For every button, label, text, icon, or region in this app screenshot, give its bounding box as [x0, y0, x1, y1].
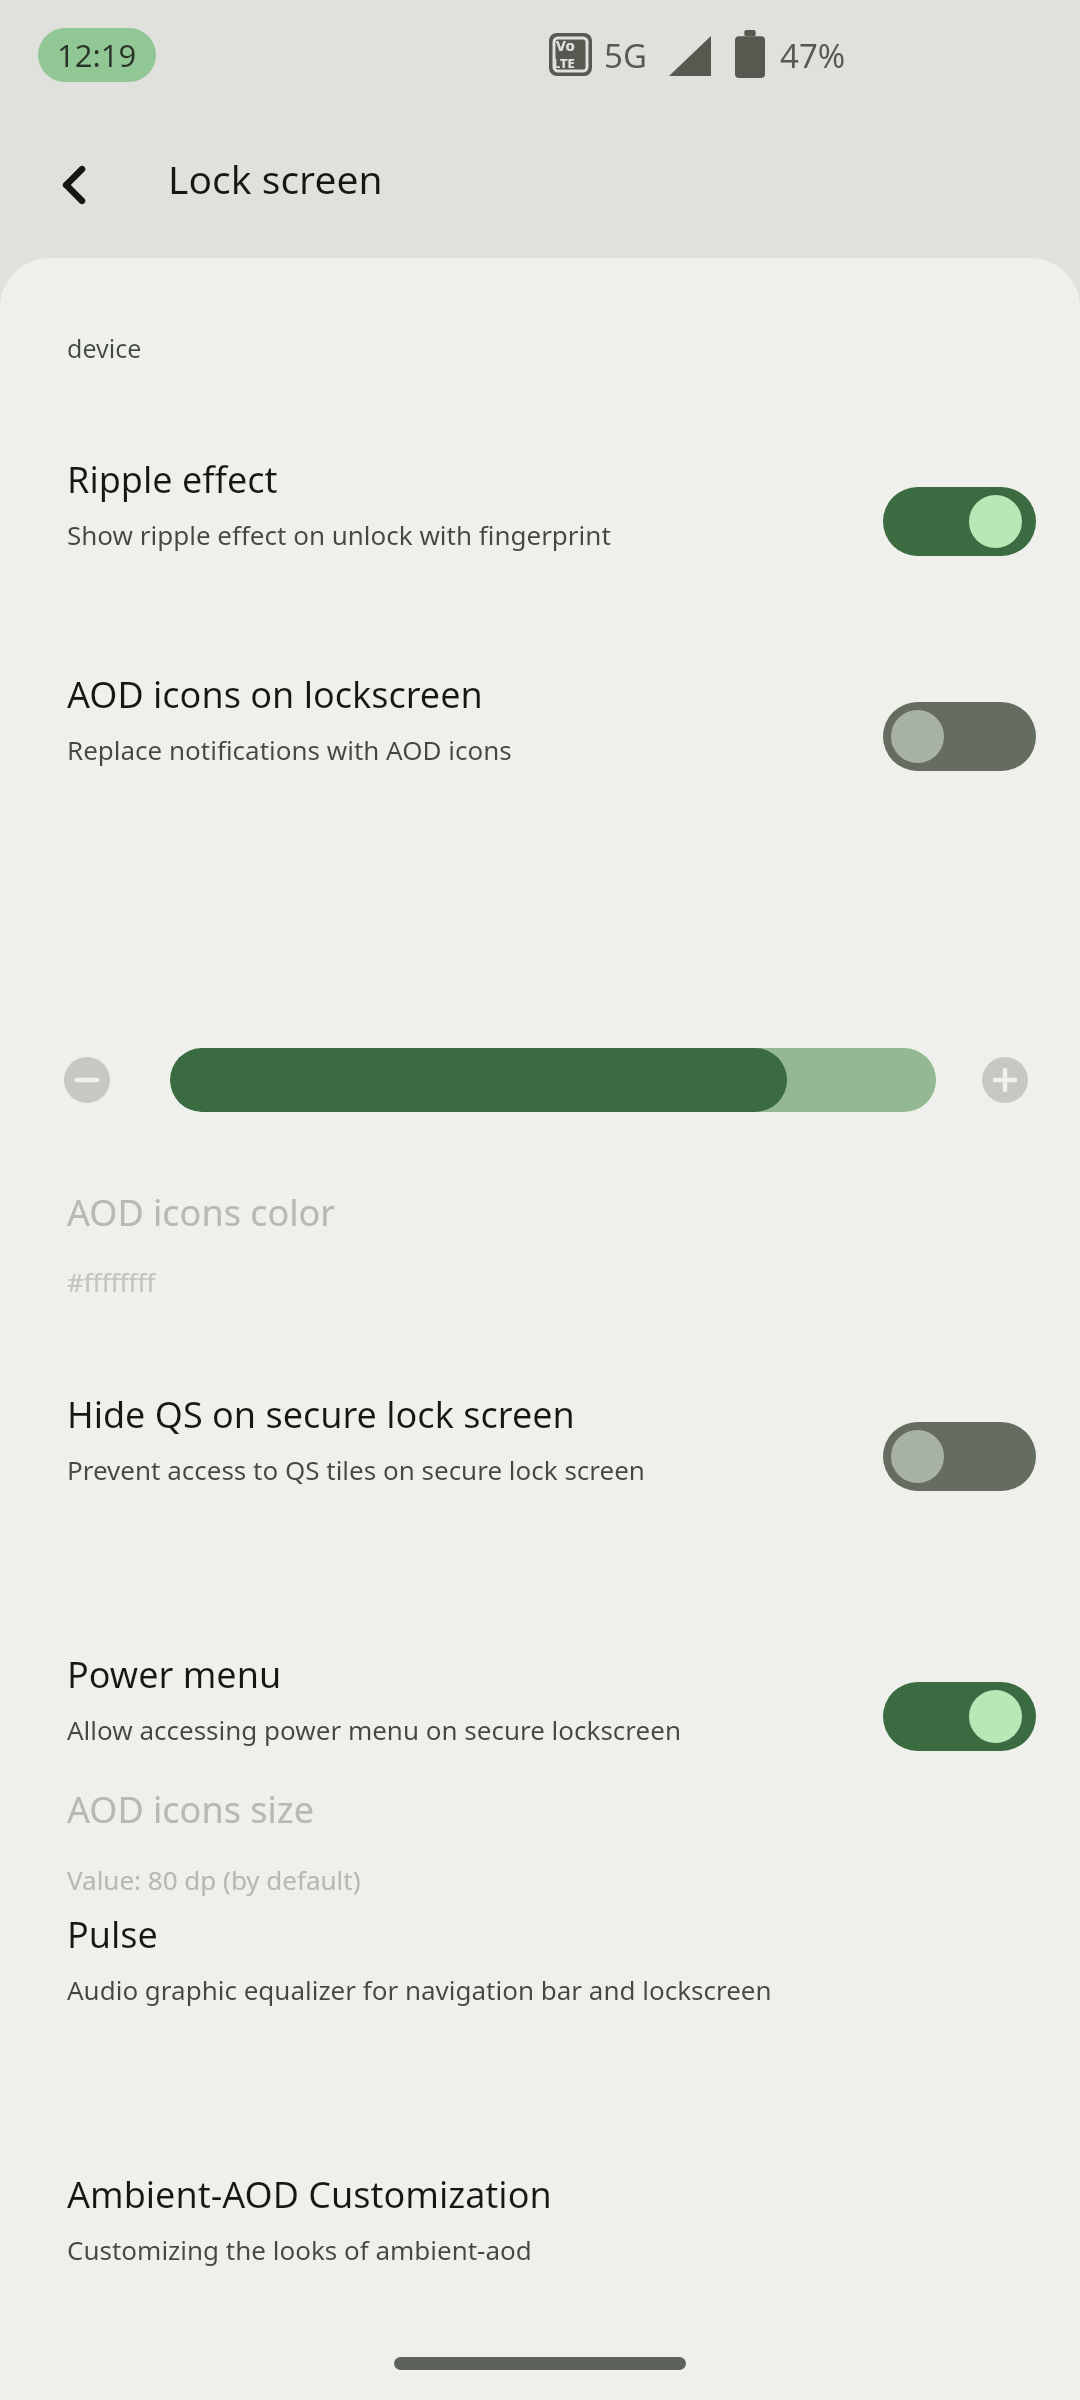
staticText: AOD icons on lockscreen — [67, 670, 867, 719]
staticText: AOD icons size — [67, 1785, 314, 1834]
staticText: Ripple effect — [67, 455, 867, 504]
staticText: 12:19 — [57, 34, 137, 76]
button[interactable]: Off — [883, 1422, 1036, 1491]
staticText: Audio graphic equalizer for navigation b… — [67, 1972, 937, 2007]
staticText: Vo — [556, 35, 575, 55]
button[interactable]: On — [883, 487, 1036, 556]
button[interactable]: Decrease — [64, 1057, 110, 1103]
staticText: 47% — [780, 33, 846, 78]
staticText: Allow accessing power menu on secure loc… — [67, 1712, 857, 1747]
staticText: #ffffffff — [67, 1264, 156, 1299]
staticText: Hide QS on secure lock screen — [67, 1390, 867, 1439]
staticText: device — [67, 331, 142, 365]
staticText: Lock screen — [168, 152, 383, 205]
staticText: Customizing the looks of ambient-aod — [67, 2232, 937, 2267]
button[interactable]: Power menu — [0, 1650, 1080, 1850]
staticText: Value: 80 dp (by default) — [67, 1862, 361, 1897]
button[interactable]: AOD icons on lockscreen — [0, 670, 1080, 815]
button[interactable] — [170, 1048, 936, 1112]
staticText: LTE — [553, 54, 575, 72]
staticText: Ambient-AOD Customization — [67, 2170, 867, 2219]
button[interactable]: Off — [883, 702, 1036, 771]
staticText: 5G — [604, 33, 647, 78]
staticText: Pulse — [67, 1910, 867, 1959]
staticText: Show ripple effect on unlock with finger… — [67, 517, 867, 552]
staticText: AOD icons color — [67, 1188, 336, 1237]
button[interactable]: Hide QS on secure lock screen — [0, 1390, 1080, 1590]
button[interactable]: Pulse — [0, 1910, 1080, 2110]
button[interactable]: Ambient-AOD Customization — [0, 2170, 1080, 2330]
staticText: Power menu — [67, 1650, 867, 1699]
button[interactable]: Ripple effect — [0, 455, 1080, 600]
staticText: Replace notifications with AOD icons — [67, 732, 867, 767]
button[interactable]: Increase — [982, 1057, 1028, 1103]
button[interactable]: Back — [30, 140, 120, 230]
staticText: Prevent access to QS tiles on secure loc… — [67, 1452, 857, 1487]
button[interactable]: On — [883, 1682, 1036, 1751]
